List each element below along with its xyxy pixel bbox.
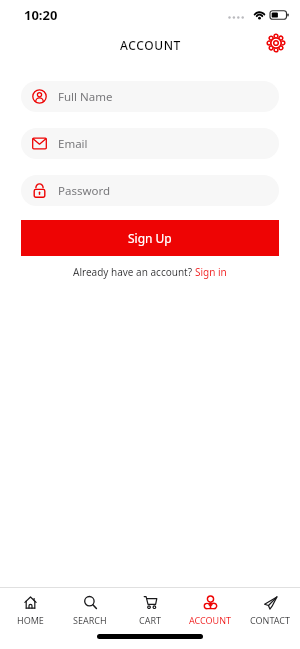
button[interactable]: CONTACT: [240, 588, 300, 626]
button[interactable]: Full Name: [21, 81, 279, 112]
staticText: ACCOUNT: [189, 614, 232, 626]
button[interactable]: Sign in: [195, 265, 227, 279]
staticText: Full Name: [58, 89, 113, 105]
button[interactable]: CART: [120, 588, 180, 626]
staticText: Sign Up: [128, 230, 172, 246]
button[interactable]: Password: [21, 175, 279, 206]
button[interactable]: Email: [21, 128, 279, 159]
staticText: Already have an account?: [73, 265, 195, 279]
staticText: Email: [58, 136, 88, 152]
button[interactable]: SEARCH: [60, 588, 120, 626]
staticText: SEARCH: [73, 614, 107, 626]
button[interactable]: [263, 30, 289, 56]
staticText: ACCOUNT: [120, 37, 181, 53]
staticText: HOME: [17, 614, 44, 626]
staticText: CONTACT: [250, 614, 291, 626]
button[interactable]: Sign Up: [21, 220, 279, 256]
staticText: CART: [139, 614, 162, 626]
staticText: Password: [58, 183, 111, 199]
button[interactable]: ACCOUNT: [180, 588, 240, 626]
button[interactable]: HOME: [0, 588, 60, 626]
staticText: 10:20: [24, 6, 58, 24]
